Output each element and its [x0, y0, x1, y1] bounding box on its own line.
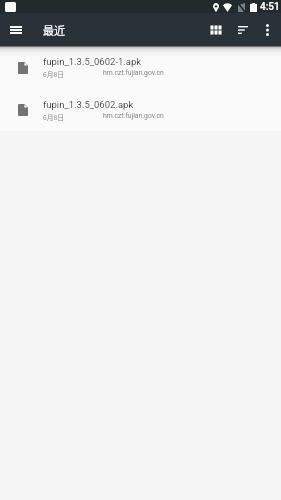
staticText: 最近	[43, 22, 65, 38]
staticText: hm.czt.fujian.gov.cn	[103, 112, 164, 120]
staticText: fupin_1.3.5_0602.apk	[43, 99, 134, 110]
button[interactable]: Grid view	[202, 13, 230, 46]
staticText: 6月8日	[43, 112, 65, 122]
staticText: 4:51	[260, 1, 280, 13]
button[interactable]: Navigation menu	[4, 13, 28, 46]
staticText: hm.czt.fujian.gov.cn	[103, 69, 164, 77]
button[interactable]: More options	[256, 13, 279, 46]
staticText: 6月8日	[43, 69, 65, 79]
button[interactable]: fupin_1.3.5_0602-1.apk	[0, 46, 281, 89]
staticText: fupin_1.3.5_0602-1.apk	[43, 56, 142, 67]
button[interactable]: Sort	[230, 13, 256, 46]
button[interactable]: fupin_1.3.5_0602.apk	[0, 89, 281, 131]
